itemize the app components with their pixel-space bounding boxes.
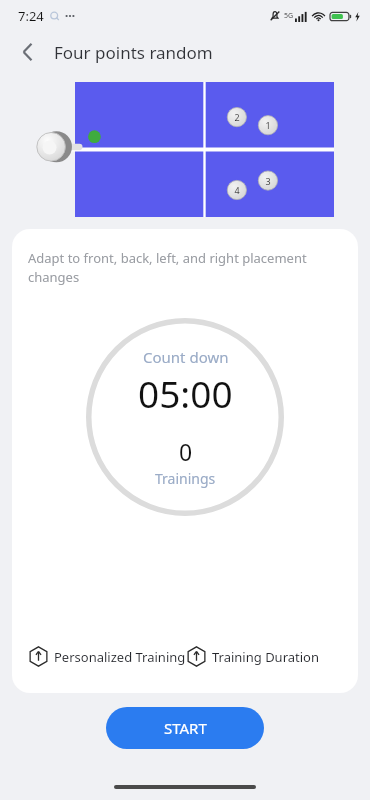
staticText: 2 <box>234 111 240 123</box>
staticText: START <box>164 718 207 738</box>
button[interactable]: Training Duration <box>186 642 320 671</box>
staticText: 5G <box>284 11 294 21</box>
staticText: Adapt to front, back, left, and right pl… <box>28 249 342 286</box>
staticText: 4 <box>234 184 240 196</box>
staticText: Trainings <box>155 469 216 488</box>
staticText: Count down <box>143 347 229 367</box>
button[interactable]: Back <box>8 32 48 72</box>
staticText: 1 <box>265 119 271 131</box>
staticText: 7:24 <box>18 7 44 25</box>
staticText: 05:00 <box>138 368 233 418</box>
staticText: Training Duration <box>212 648 320 666</box>
button[interactable]: Personalized Training <box>28 642 186 671</box>
staticText: 3 <box>265 175 271 187</box>
button[interactable]: START <box>106 707 264 749</box>
staticText: Personalized Training <box>54 648 186 666</box>
staticText: Four points random <box>54 41 213 64</box>
staticText: 0 <box>179 436 193 467</box>
